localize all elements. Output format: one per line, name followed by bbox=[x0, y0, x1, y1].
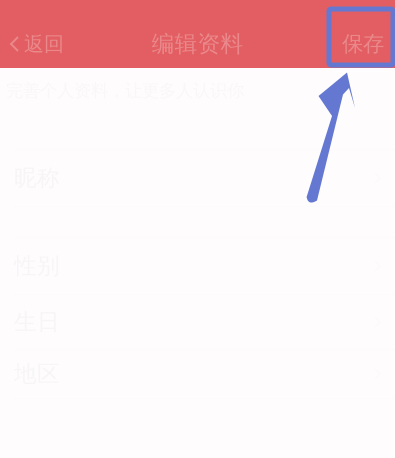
button[interactable]: 返回 bbox=[0, 23, 72, 65]
staticText: 保存 bbox=[342, 31, 384, 57]
button[interactable]: 保存 bbox=[328, 22, 395, 66]
staticText: 编辑资料 bbox=[151, 30, 243, 58]
staticText: 返回 bbox=[24, 32, 64, 56]
button[interactable]: 昵称 bbox=[0, 150, 395, 206]
